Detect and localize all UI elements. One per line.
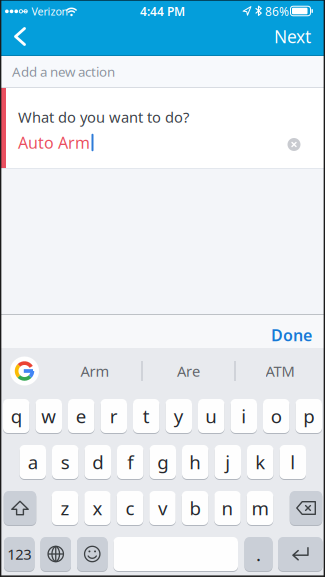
staticText: f [127, 450, 133, 474]
button[interactable]: i [230, 399, 257, 433]
staticText: m [251, 496, 268, 520]
staticText: Verizon [31, 4, 68, 18]
button[interactable]: ATM [236, 356, 324, 386]
staticText: 86% [265, 3, 289, 19]
staticText: Are [177, 361, 200, 381]
staticText: 4:44 PM [140, 3, 185, 19]
button[interactable]: s [52, 445, 78, 479]
staticText: w [41, 404, 56, 428]
button[interactable]: Clear text [287, 138, 300, 151]
button[interactable]: k [247, 445, 273, 479]
staticText: Arm [80, 361, 109, 381]
staticText: z [60, 496, 69, 520]
button[interactable]: g [149, 445, 176, 479]
button[interactable]: f [117, 445, 143, 479]
staticText: u [205, 404, 217, 428]
staticText: Auto Arm [18, 132, 90, 153]
staticText: j [225, 450, 230, 474]
button[interactable]: l [279, 445, 306, 479]
button[interactable]: v [149, 491, 176, 525]
staticText: y [174, 404, 184, 428]
staticText: p [303, 404, 314, 428]
button[interactable]: q [3, 399, 29, 433]
button[interactable]: b [182, 491, 208, 525]
button[interactable]: Switch keyboard [40, 537, 71, 571]
staticText: e [76, 404, 87, 428]
button[interactable]: Period [244, 537, 272, 571]
button[interactable]: Emoji [77, 537, 107, 571]
staticText: o [271, 404, 282, 428]
button[interactable]: t [133, 399, 159, 433]
staticText: k [255, 450, 265, 474]
staticText: ATM [265, 361, 294, 381]
staticText: r [110, 404, 118, 428]
button[interactable]: y [165, 399, 192, 433]
button[interactable]: a [19, 445, 46, 479]
button[interactable]: x [84, 491, 111, 525]
button[interactable]: w [35, 399, 62, 433]
staticText: . [256, 542, 261, 566]
button[interactable]: j [214, 445, 241, 479]
staticText: q [11, 404, 22, 428]
staticText: Add a new action [12, 63, 115, 80]
staticText: c [125, 496, 134, 520]
button[interactable]: p [295, 399, 322, 433]
button[interactable]: Numbers [4, 537, 34, 571]
staticText: a [28, 450, 38, 474]
button[interactable]: r [100, 399, 127, 433]
staticText: v [158, 496, 167, 520]
button[interactable]: Arm [50, 356, 140, 386]
button[interactable]: Are [143, 356, 233, 386]
staticText: g [157, 450, 168, 474]
button[interactable]: c [117, 491, 143, 525]
staticText: Done [271, 324, 312, 346]
button[interactable]: Return [278, 537, 322, 571]
staticText: Next [274, 25, 311, 48]
button[interactable]: Delete [290, 491, 322, 525]
button[interactable]: Next [274, 25, 311, 48]
staticText: s [61, 450, 70, 474]
staticText: b [189, 496, 200, 520]
staticText: l [290, 450, 295, 474]
button[interactable]: e [68, 399, 94, 433]
button[interactable]: o [263, 399, 289, 433]
button[interactable]: Google search [10, 356, 39, 385]
staticText: n [221, 496, 233, 520]
button[interactable]: m [247, 491, 273, 525]
staticText: t [143, 404, 150, 428]
staticText: h [189, 450, 201, 474]
button[interactable]: Shift [4, 491, 36, 525]
staticText: i [241, 404, 246, 428]
button[interactable]: d [84, 445, 111, 479]
button[interactable]: Back [14, 27, 26, 46]
button[interactable]: h [182, 445, 208, 479]
button[interactable]: n [214, 491, 241, 525]
staticText: d [92, 450, 103, 474]
button[interactable]: Done [271, 324, 312, 346]
staticText: What do you want to do? [18, 107, 189, 127]
staticText: 123 [7, 544, 31, 564]
button[interactable]: u [198, 399, 224, 433]
button[interactable]: z [52, 491, 78, 525]
staticText: x [92, 496, 102, 520]
